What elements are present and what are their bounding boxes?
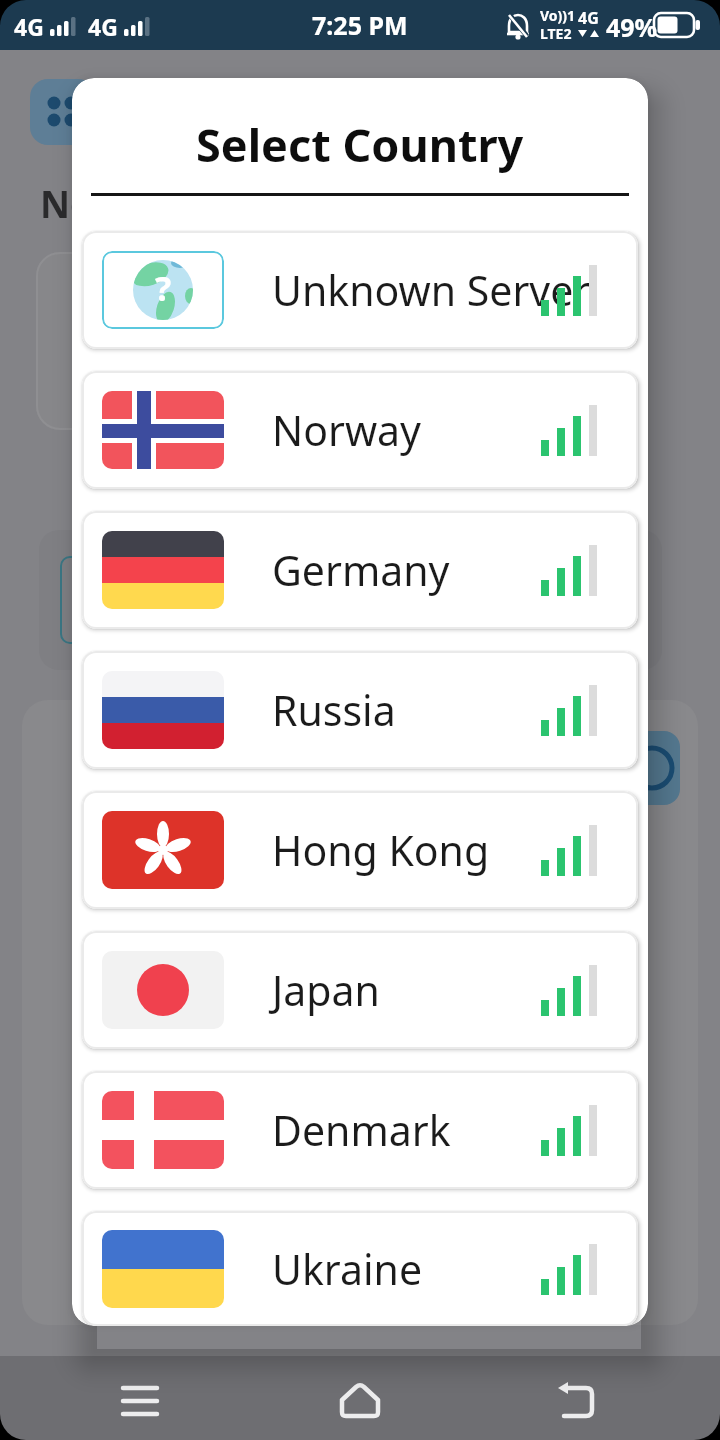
- staticText: Germany: [272, 542, 450, 598]
- button[interactable]: Japan: [82, 931, 638, 1049]
- staticText: Vo))1: [540, 6, 576, 25]
- staticText: 4G: [88, 11, 118, 42]
- button[interactable]: Denmark: [82, 1071, 638, 1189]
- staticText: 49%: [606, 10, 658, 44]
- button[interactable]: Norway: [82, 371, 638, 489]
- staticText: 4G: [578, 7, 599, 29]
- button[interactable]: [108, 1382, 172, 1430]
- button[interactable]: [328, 1382, 392, 1430]
- staticText: 7:25 PM: [312, 8, 408, 42]
- staticText: Denmark: [272, 1102, 451, 1158]
- staticText: 4G: [14, 11, 44, 42]
- staticText: Norway: [272, 402, 422, 458]
- button[interactable]: Germany: [82, 511, 638, 629]
- staticText: Unknown Server: [272, 262, 591, 318]
- staticText: LTE2: [540, 24, 572, 43]
- staticText: Russia: [272, 682, 396, 738]
- button[interactable]: [546, 1382, 610, 1430]
- button[interactable]: Hong Kong: [82, 791, 638, 909]
- button[interactable]: Russia: [82, 651, 638, 769]
- staticText: Ukraine: [272, 1241, 423, 1297]
- staticText: Japan: [272, 962, 380, 1018]
- button[interactable]: ?: [82, 231, 638, 349]
- staticText: Select Country: [196, 114, 524, 175]
- button[interactable]: Ukraine: [82, 1211, 638, 1326]
- staticText: Not Connected: [40, 178, 317, 228]
- staticText: Hong Kong: [272, 822, 490, 878]
- staticText: ?: [155, 265, 172, 311]
